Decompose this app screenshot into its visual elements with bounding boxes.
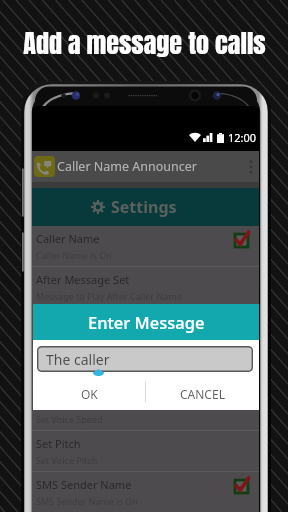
staticText: SMS Sender Name is On bbox=[36, 495, 138, 507]
staticText: Set Pitch bbox=[36, 436, 81, 451]
button[interactable]: After Message Set bbox=[32, 267, 259, 308]
button[interactable]: Before Message Set bbox=[32, 308, 259, 349]
button[interactable]: OK bbox=[33, 381, 145, 406]
staticText: Caller Name Announcer bbox=[57, 158, 197, 175]
staticText: Before Message Set bbox=[36, 313, 139, 328]
staticText: Set Voice Pitch bbox=[36, 454, 98, 466]
staticText: Set Voice Speed bbox=[36, 395, 118, 410]
staticText: 12:00 bbox=[228, 130, 257, 145]
staticText: Message to Play After Caller Name bbox=[36, 290, 182, 302]
button[interactable]: Set Pitch bbox=[32, 431, 259, 472]
staticText: OK bbox=[81, 386, 98, 402]
staticText: SMS Sender Name bbox=[36, 477, 132, 492]
staticText: The caller bbox=[46, 350, 110, 369]
button[interactable]: Caller Name bbox=[32, 226, 259, 267]
button[interactable]: Select Language bbox=[32, 349, 259, 390]
staticText: Settings bbox=[111, 196, 177, 218]
staticText: Add a message to calls bbox=[23, 23, 266, 62]
staticText: Caller Name bbox=[36, 231, 100, 246]
button[interactable]: SMS Sender Name bbox=[32, 472, 259, 512]
staticText: Enter Message bbox=[88, 311, 205, 333]
staticText: Select Announce Language bbox=[36, 372, 151, 384]
button[interactable]: Settings bbox=[32, 188, 259, 226]
staticText: After Message Set bbox=[36, 272, 130, 287]
staticText: Select Language bbox=[36, 354, 121, 369]
staticText: Message to Play Before Caller Name bbox=[36, 331, 189, 343]
button[interactable]: CANCEL bbox=[146, 381, 259, 406]
staticText: Caller Name is On bbox=[36, 249, 112, 261]
button[interactable]: Set Voice Speed bbox=[32, 390, 259, 431]
button[interactable]: More options bbox=[243, 151, 259, 182]
button[interactable]: The caller bbox=[37, 346, 253, 372]
staticText: Set Voice Speed bbox=[36, 413, 103, 425]
button[interactable]: Caller Name Announcer bbox=[32, 151, 259, 182]
staticText: CANCEL bbox=[180, 386, 225, 402]
